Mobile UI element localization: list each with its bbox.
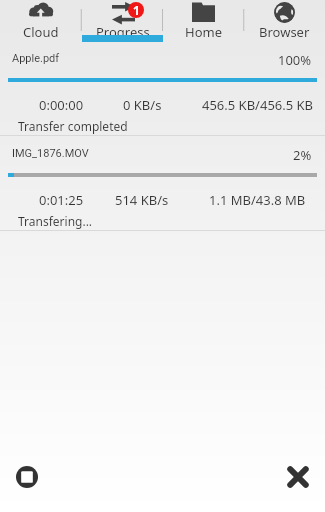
button[interactable]: Cloud: [0, 0, 82, 42]
staticText: 0:01:25: [39, 191, 84, 209]
staticText: 2%: [293, 146, 312, 164]
button[interactable]: Cancel: [278, 457, 318, 497]
staticText: Apple.pdf: [12, 52, 60, 65]
button[interactable]: Stop: [7, 457, 47, 497]
button[interactable]: Browser: [244, 0, 325, 42]
staticText: Progress: [96, 23, 150, 41]
staticText: Browser: [259, 23, 310, 41]
staticText: 1: [133, 2, 140, 18]
staticText: Cloud: [23, 23, 59, 41]
staticText: 0 KB/s: [123, 96, 162, 114]
staticText: 1.1 MB/43.8 MB: [209, 191, 306, 209]
staticText: 514 KB/s: [115, 191, 169, 209]
button[interactable]: 1: [82, 0, 163, 42]
staticText: IMG_1876.MOV: [12, 147, 89, 160]
staticText: 0:00:00: [39, 96, 84, 114]
button[interactable]: Home: [163, 0, 244, 42]
button[interactable]: Apple.pdf: [0, 40, 325, 135]
staticText: Transfer completed: [18, 118, 128, 134]
staticText: Home: [185, 23, 222, 41]
staticText: Transfering...: [18, 213, 93, 229]
button[interactable]: IMG_1876.MOV: [0, 135, 325, 230]
staticText: 100%: [278, 51, 312, 69]
staticText: 456.5 KB/456.5 KB: [202, 96, 314, 114]
